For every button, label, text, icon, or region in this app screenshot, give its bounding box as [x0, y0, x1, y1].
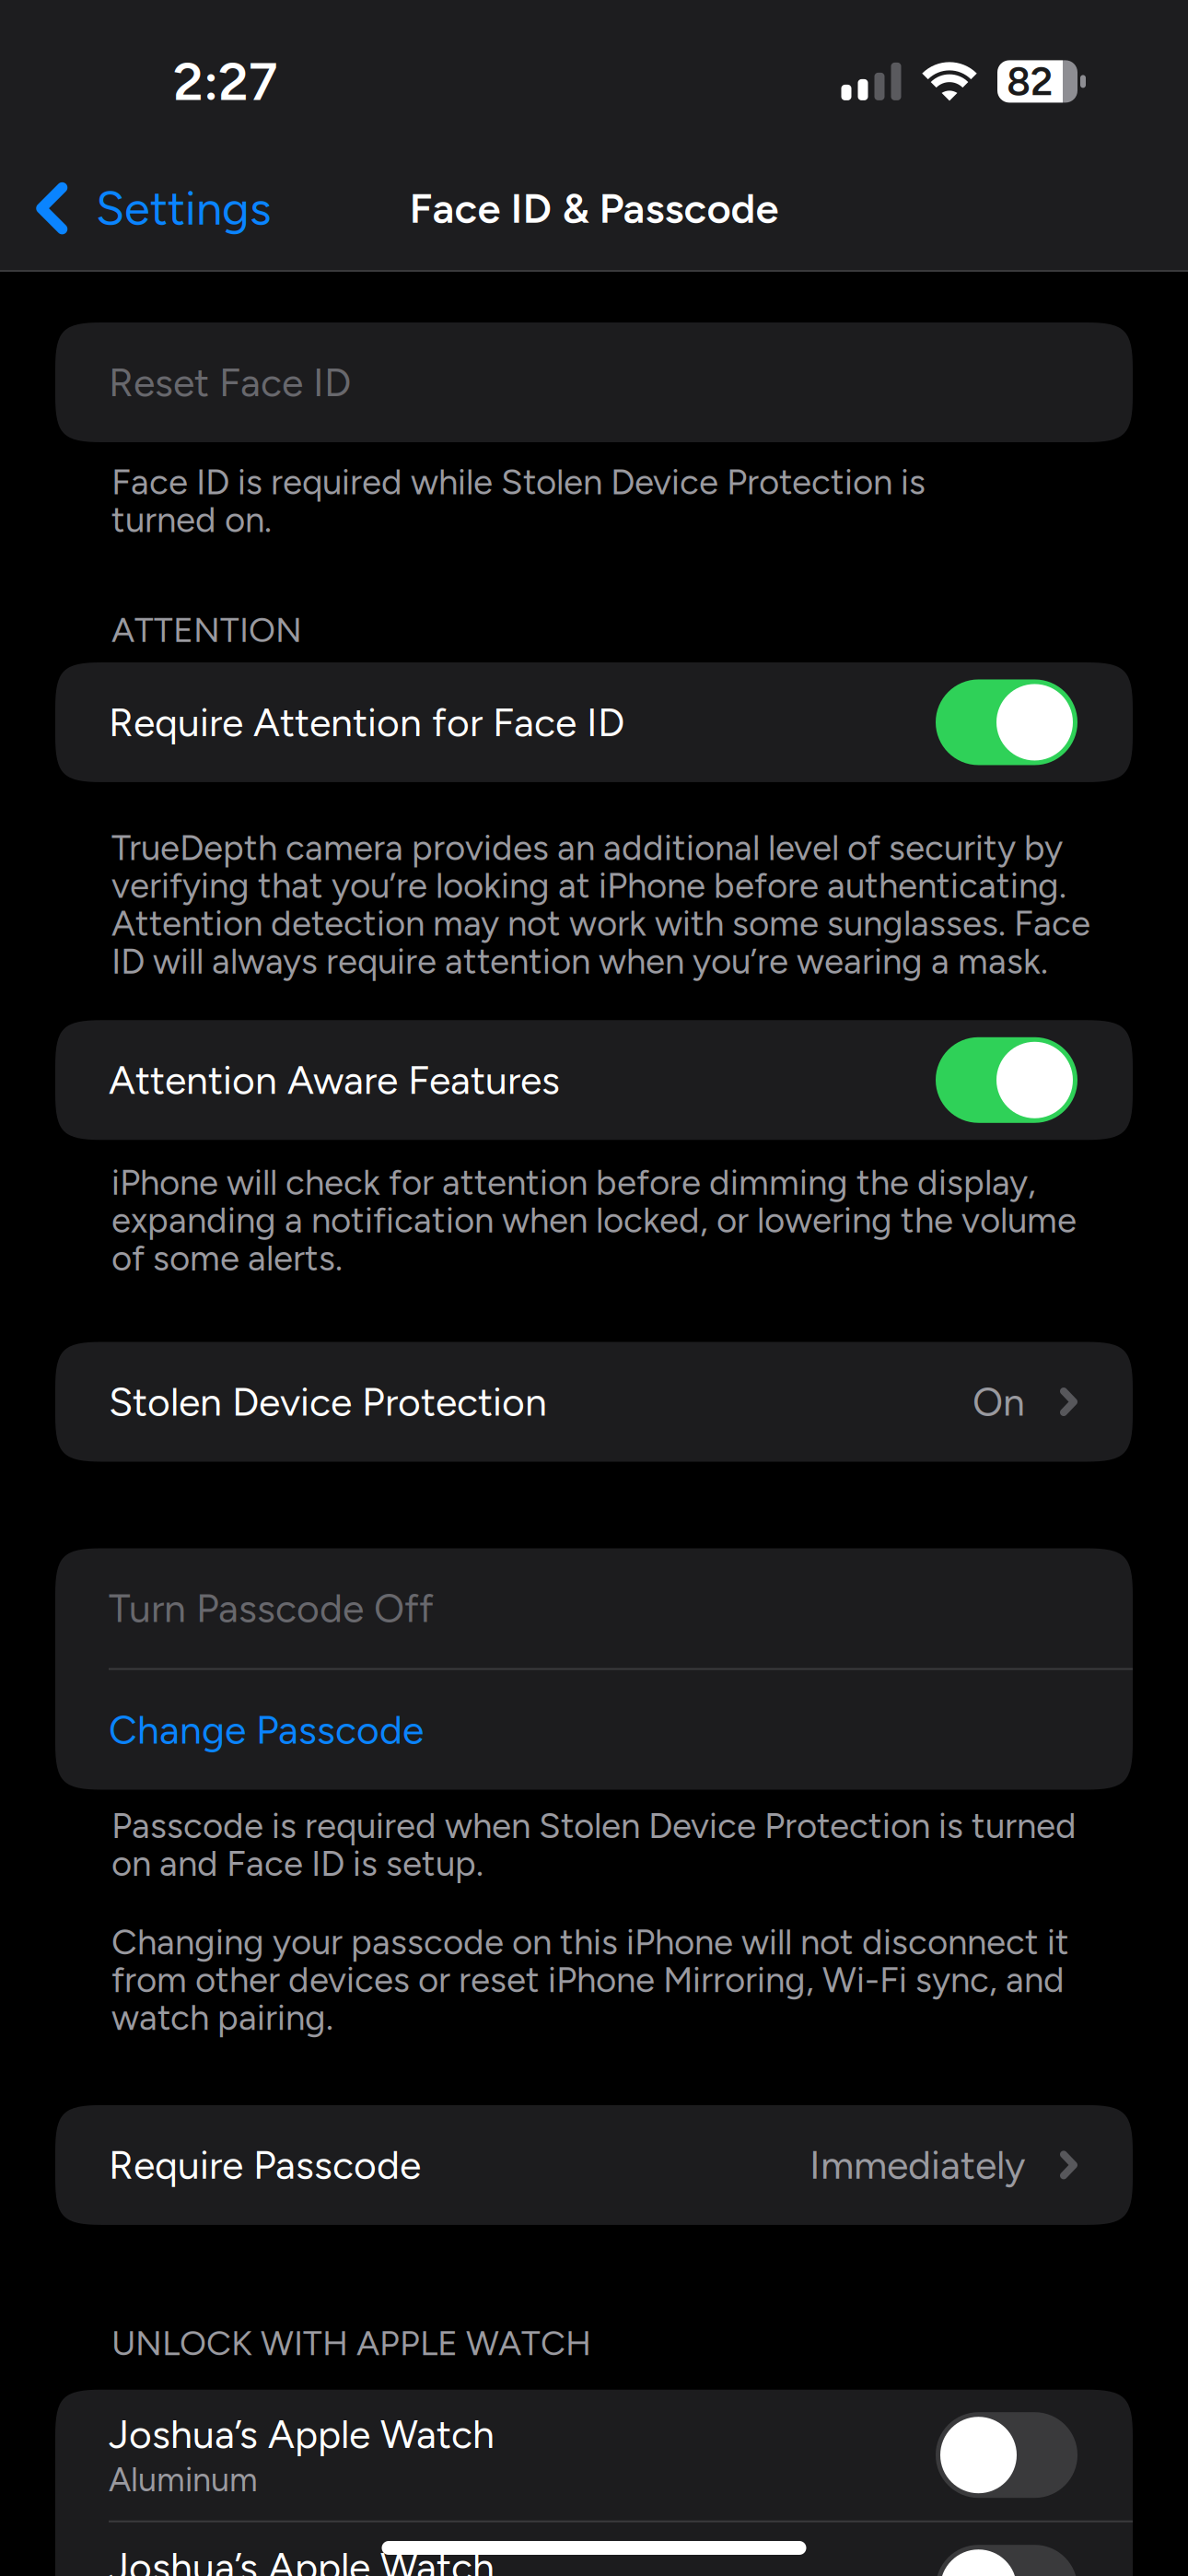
staticText: ATTENTION [111, 609, 302, 650]
staticText: Change Passcode [109, 1706, 424, 1753]
staticText: Immediately [809, 2141, 1025, 2189]
staticText: iPhone will check for attention before d… [111, 1161, 1077, 1279]
button[interactable]: Joshua’s Apple Watch [55, 2390, 1133, 2520]
staticText: 2:27 [173, 50, 277, 113]
staticText: TrueDepth camera provides an additional … [111, 826, 1090, 982]
staticText: Stolen Device Protection [109, 1378, 547, 1425]
button[interactable]: Joshua’s Apple Watch [55, 2522, 1133, 2576]
button[interactable]: Require Attention for Face ID [55, 662, 1133, 782]
button[interactable]: Stolen Device Protection [55, 1342, 1133, 1462]
staticText: Settings [96, 180, 272, 236]
staticText: UNLOCK WITH APPLE WATCH [111, 2323, 591, 2364]
staticText: Face ID is required while Stolen Device … [111, 461, 926, 541]
button[interactable]: Change Passcode [55, 1670, 1133, 1790]
button[interactable]: Settings [0, 173, 272, 244]
button[interactable]: Attention Aware Features [55, 1020, 1133, 1140]
staticText: Changing your passcode on this iPhone wi… [111, 1921, 1069, 2039]
staticText: Require Attention for Face ID [109, 699, 624, 746]
staticText: 82 [1007, 58, 1053, 105]
staticText: Turn Passcode Off [109, 1585, 434, 1632]
button[interactable]: Turn Passcode Off [55, 1548, 1133, 1668]
button[interactable]: Require Passcode [55, 2105, 1133, 2225]
staticText: Reset Face ID [109, 359, 351, 406]
staticText: On [973, 1378, 1025, 1425]
staticText: Joshua’s Apple Watch [109, 2543, 495, 2576]
staticText: Require Passcode [109, 2141, 421, 2189]
staticText: Aluminum [109, 2460, 258, 2499]
staticText: Face ID & Passcode [409, 183, 779, 233]
staticText: Attention Aware Features [109, 1056, 560, 1104]
staticText: Joshua’s Apple Watch [109, 2411, 495, 2458]
button[interactable]: Reset Face ID [55, 322, 1133, 442]
staticText: Passcode is required when Stolen Device … [111, 1804, 1077, 1885]
